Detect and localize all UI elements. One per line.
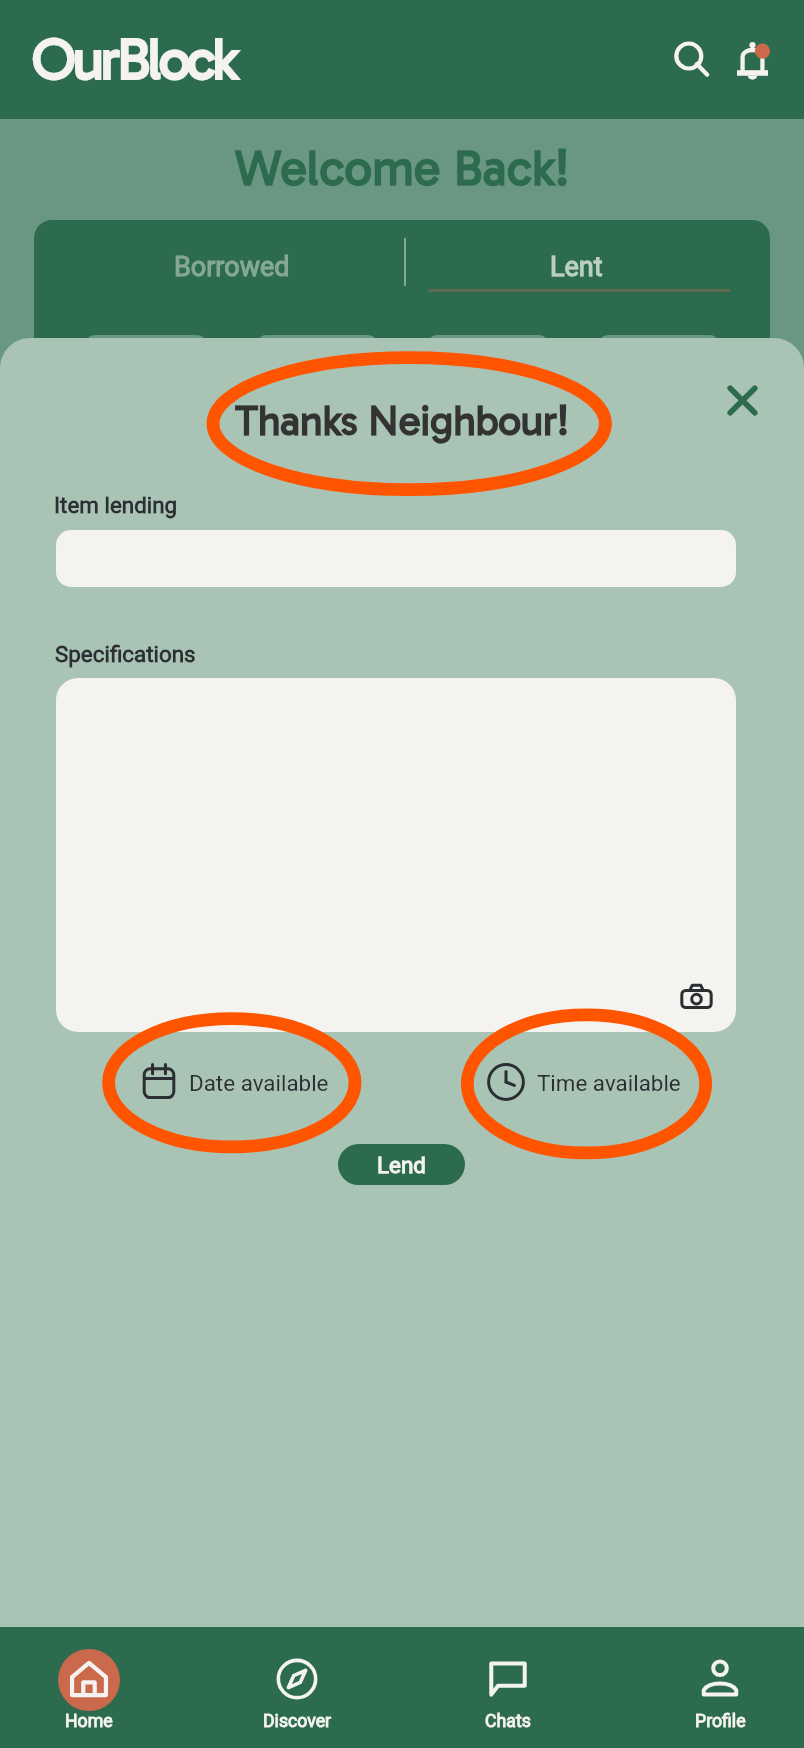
- staticText: Chats: [485, 1711, 531, 1732]
- button[interactable]: Notifications: [726, 36, 778, 88]
- staticText: Thanks Neighbour!: [0, 396, 804, 445]
- staticText: Welcome Back!: [0, 139, 804, 198]
- button[interactable]: Date available: [134, 1059, 335, 1105]
- button[interactable]: Home: [25, 1627, 153, 1748]
- button[interactable]: Borrowed: [34, 220, 404, 338]
- staticText: Item lending: [54, 492, 178, 518]
- button[interactable]: Close: [718, 376, 766, 424]
- button[interactable]: Discover: [233, 1627, 361, 1748]
- staticText: Borrowed: [174, 251, 290, 283]
- staticText: Time available: [537, 1070, 681, 1096]
- staticText: Lent: [550, 251, 603, 283]
- staticText: Home: [65, 1711, 113, 1732]
- button[interactable]: Time available: [479, 1057, 687, 1107]
- staticText: Specifications: [55, 641, 196, 667]
- staticText: OurBlock: [32, 25, 236, 93]
- button[interactable]: Search: [664, 32, 720, 88]
- button[interactable]: [56, 530, 736, 587]
- button[interactable]: Lend: [338, 1144, 465, 1185]
- staticText: Date available: [189, 1070, 329, 1096]
- staticText: Discover: [263, 1711, 332, 1732]
- button[interactable]: Add photo: [673, 974, 719, 1020]
- button[interactable]: Lent: [406, 220, 770, 338]
- button[interactable]: Profile: [656, 1627, 784, 1748]
- button[interactable]: Chats: [444, 1627, 572, 1748]
- staticText: Profile: [695, 1711, 746, 1732]
- staticText: Lend: [377, 1152, 426, 1178]
